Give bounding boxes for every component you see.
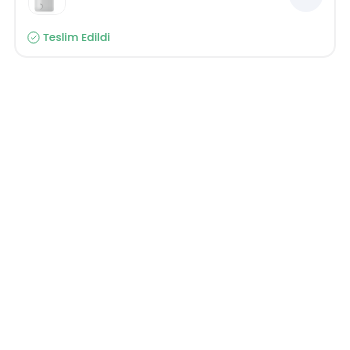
- button[interactable]: Teslim Edildi: [27, 16, 323, 58]
- button[interactable]: Sipariş No: [14, 0, 336, 58]
- staticText: Teslim Edildi: [43, 30, 111, 45]
- button[interactable]: Ürün görseli: [28, 0, 66, 15]
- button[interactable]: Tekrar satın al: [289, 0, 323, 12]
